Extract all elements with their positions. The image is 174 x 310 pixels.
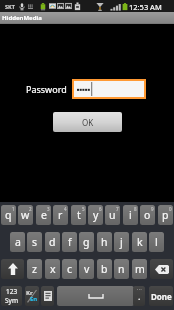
button[interactable]: j — [114, 232, 129, 252]
staticText: s — [32, 235, 38, 249]
staticText: l — [155, 235, 158, 249]
staticText: h — [101, 235, 108, 249]
button[interactable]: e — [36, 205, 51, 225]
staticText: x — [50, 262, 56, 276]
staticText: r — [58, 208, 63, 222]
button[interactable]: w — [18, 205, 33, 225]
staticText: k — [137, 235, 143, 249]
button[interactable]: z — [27, 259, 42, 279]
staticText: 1 — [12, 206, 15, 212]
staticText: Kr — [26, 289, 33, 297]
staticText: q — [5, 208, 12, 222]
button[interactable]: a — [10, 232, 25, 252]
staticText: 0 — [169, 206, 172, 212]
button[interactable]: 123 — [1, 286, 22, 306]
button[interactable]: v — [79, 259, 94, 279]
staticText: e — [41, 208, 47, 222]
button[interactable]: n — [114, 259, 129, 279]
staticText: 123 — [6, 287, 18, 296]
staticText: n — [118, 262, 125, 276]
staticText: j — [120, 235, 123, 249]
staticText: . — [138, 290, 141, 302]
staticText: En — [30, 295, 38, 303]
staticText: w — [21, 208, 30, 222]
button[interactable]: k — [132, 232, 147, 252]
button[interactable]: Change language — [25, 286, 39, 306]
staticText: p — [162, 208, 169, 222]
staticText: f — [68, 235, 72, 249]
staticText: g — [83, 235, 90, 249]
staticText: 5 — [82, 206, 85, 212]
button[interactable]: Space — [57, 286, 134, 306]
staticText: ⋯ — [137, 286, 142, 292]
button[interactable] — [72, 79, 146, 99]
staticText: 3 — [47, 206, 50, 212]
staticText: t — [77, 208, 81, 222]
staticText: SKT — [5, 3, 15, 10]
button[interactable]: m — [132, 259, 147, 279]
button[interactable]: OK — [53, 112, 122, 132]
staticText: 9 — [151, 206, 154, 212]
staticText: o — [144, 208, 151, 222]
staticText: y — [93, 208, 99, 222]
button[interactable]: Done — [149, 286, 173, 306]
button[interactable]: o — [140, 205, 155, 225]
button[interactable]: d — [45, 232, 60, 252]
staticText: Sym — [5, 296, 18, 305]
button[interactable]: c — [62, 259, 77, 279]
staticText: 7 — [116, 206, 119, 212]
button[interactable]: l — [149, 232, 164, 252]
button[interactable]: g — [79, 232, 94, 252]
staticText: a — [15, 235, 21, 249]
staticText: 6 — [99, 206, 102, 212]
button[interactable]: p — [158, 205, 173, 225]
staticText: Password — [26, 83, 67, 95]
button[interactable]: h — [97, 232, 112, 252]
staticText: d — [49, 235, 56, 249]
staticText: 12:53 AM — [129, 2, 162, 12]
staticText: 4 — [64, 206, 67, 212]
button[interactable]: i — [123, 205, 138, 225]
staticText: i — [129, 208, 132, 222]
staticText: b — [101, 262, 108, 276]
staticText: HiddenMedia — [2, 14, 42, 22]
staticText: 2 — [29, 206, 32, 212]
button[interactable]: Clipboard — [41, 286, 54, 306]
staticText: v — [84, 262, 90, 276]
staticText: OK — [82, 117, 94, 128]
staticText: c — [67, 262, 73, 276]
button[interactable]: s — [27, 232, 42, 252]
staticText: z — [32, 262, 37, 276]
staticText: u — [109, 208, 116, 222]
button[interactable]: b — [97, 259, 112, 279]
button[interactable]: u — [105, 205, 120, 225]
staticText: m — [135, 262, 145, 276]
button[interactable]: x — [45, 259, 60, 279]
button[interactable]: . — [133, 286, 145, 306]
button[interactable]: y — [88, 205, 103, 225]
staticText: Done — [151, 291, 172, 302]
button[interactable]: t — [71, 205, 86, 225]
button[interactable]: r — [53, 205, 68, 225]
button[interactable]: q — [1, 205, 16, 225]
staticText: 8 — [134, 206, 137, 212]
button[interactable]: f — [62, 232, 77, 252]
button[interactable]: Shift — [1, 259, 24, 279]
button[interactable]: Backspace — [150, 259, 173, 279]
